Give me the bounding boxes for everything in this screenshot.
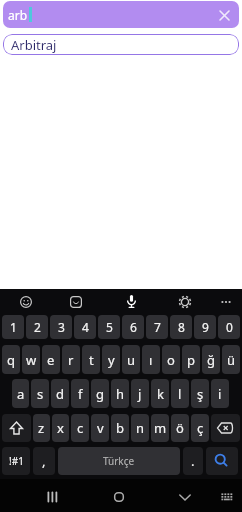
- staticText: t: [89, 351, 94, 369]
- staticText: ü: [227, 351, 236, 369]
- button[interactable]: s: [31, 379, 49, 408]
- button[interactable]: [215, 485, 239, 509]
- button[interactable]: [214, 5, 234, 25]
- button[interactable]: 4: [74, 315, 96, 339]
- button[interactable]: j: [131, 379, 149, 408]
- staticText: a: [17, 385, 25, 403]
- staticText: ç: [197, 419, 204, 437]
- button[interactable]: [107, 485, 131, 509]
- button[interactable]: 5: [98, 315, 120, 339]
- button[interactable]: h: [111, 379, 129, 408]
- button[interactable]: [206, 447, 238, 475]
- button[interactable]: 8: [170, 315, 192, 339]
- staticText: arb: [8, 7, 28, 23]
- staticText: l: [178, 385, 182, 403]
- button[interactable]: ö: [171, 414, 189, 442]
- button[interactable]: [66, 292, 86, 312]
- button[interactable]: v: [91, 414, 109, 442]
- button[interactable]: ş: [191, 379, 209, 408]
- button[interactable]: l: [171, 379, 189, 408]
- staticText: d: [56, 385, 64, 403]
- button[interactable]: [216, 292, 236, 312]
- button[interactable]: f: [71, 379, 89, 408]
- button[interactable]: ç: [191, 414, 209, 442]
- staticText: f: [78, 385, 83, 403]
- staticText: ö: [176, 419, 184, 437]
- staticText: p: [187, 351, 195, 369]
- staticText: 9: [202, 319, 209, 335]
- button[interactable]: 3: [50, 315, 72, 339]
- button[interactable]: z: [33, 414, 50, 442]
- button[interactable]: ü: [222, 345, 240, 374]
- button[interactable]: g: [91, 379, 109, 408]
- button[interactable]: n: [131, 414, 149, 442]
- button[interactable]: 1: [2, 315, 24, 339]
- button[interactable]: 9: [194, 315, 216, 339]
- staticText: 4: [82, 319, 89, 335]
- staticText: 2: [34, 319, 41, 335]
- button[interactable]: x: [52, 414, 69, 442]
- staticText: !#1: [9, 454, 24, 468]
- button[interactable]: [175, 292, 195, 312]
- button[interactable]: Türkçe: [58, 447, 180, 475]
- button[interactable]: Arbitraj: [3, 34, 239, 55]
- staticText: 0: [226, 319, 233, 335]
- button[interactable]: e: [42, 345, 60, 374]
- button[interactable]: 2: [26, 315, 48, 339]
- button[interactable]: a: [12, 379, 29, 408]
- button[interactable]: !#1: [2, 447, 30, 475]
- staticText: .: [191, 452, 195, 470]
- staticText: v: [97, 419, 104, 437]
- button[interactable]: 6: [122, 315, 144, 339]
- staticText: 8: [178, 319, 185, 335]
- button[interactable]: t: [82, 345, 100, 374]
- button[interactable]: 0: [218, 315, 240, 339]
- button[interactable]: ,: [33, 447, 55, 475]
- staticText: 1: [10, 319, 17, 335]
- staticText: ş: [197, 385, 204, 403]
- button[interactable]: [16, 292, 36, 312]
- staticText: b: [116, 419, 124, 437]
- staticText: Arbitraj: [11, 36, 57, 54]
- button[interactable]: arb: [3, 1, 239, 28]
- button[interactable]: k: [151, 379, 169, 408]
- staticText: e: [47, 351, 55, 369]
- button[interactable]: [2, 414, 31, 442]
- button[interactable]: .: [183, 447, 203, 475]
- button[interactable]: y: [102, 345, 120, 374]
- button[interactable]: i: [211, 379, 229, 408]
- staticText: r: [68, 351, 74, 369]
- staticText: m: [154, 419, 167, 437]
- button[interactable]: w: [22, 345, 40, 374]
- staticText: y: [108, 351, 115, 369]
- staticText: c: [77, 419, 84, 437]
- staticText: g: [96, 385, 104, 403]
- staticText: ı: [149, 351, 153, 369]
- staticText: Türkçe: [103, 454, 135, 468]
- button[interactable]: r: [62, 345, 80, 374]
- button[interactable]: ğ: [202, 345, 220, 374]
- button[interactable]: b: [111, 414, 129, 442]
- button[interactable]: q: [2, 345, 20, 374]
- button[interactable]: p: [182, 345, 200, 374]
- button[interactable]: [40, 485, 64, 509]
- button[interactable]: c: [71, 414, 89, 442]
- staticText: 3: [58, 319, 65, 335]
- staticText: h: [116, 385, 125, 403]
- staticText: j: [138, 385, 142, 403]
- button[interactable]: [211, 414, 240, 442]
- staticText: i: [218, 385, 222, 403]
- staticText: k: [157, 385, 164, 403]
- staticText: u: [127, 351, 136, 369]
- button[interactable]: 7: [146, 315, 168, 339]
- button[interactable]: m: [151, 414, 169, 442]
- staticText: x: [57, 419, 64, 437]
- button[interactable]: o: [162, 345, 180, 374]
- button[interactable]: [121, 291, 141, 311]
- staticText: 6: [130, 319, 137, 335]
- button[interactable]: [173, 485, 197, 509]
- staticText: o: [167, 351, 175, 369]
- button[interactable]: d: [51, 379, 69, 408]
- button[interactable]: u: [122, 345, 140, 374]
- button[interactable]: ı: [142, 345, 160, 374]
